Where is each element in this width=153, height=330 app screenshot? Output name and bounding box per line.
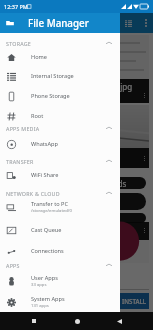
button[interactable]: Internal Storage / Audio records [2, 177, 146, 189]
staticText: Phone Storage [31, 92, 70, 100]
staticText: APPS [6, 262, 20, 269]
button[interactable]: Transfer to PC [0, 198, 120, 216]
button[interactable]: System Apps [0, 293, 120, 311]
button[interactable]: Root [0, 107, 120, 125]
button[interactable]: Home [68, 312, 86, 330]
staticText: Root [31, 112, 44, 120]
button[interactable]: More options [138, 13, 153, 33]
button[interactable]: Internal Storage / Docs [2, 213, 146, 223]
button[interactable]: Internal Storage [0, 67, 120, 85]
staticText: WhatsApp [31, 140, 58, 148]
button[interactable]: Backup of My APK On SD Card [2, 193, 146, 210]
staticText: Internal Storage [31, 72, 74, 80]
staticText: 1.2 MB 22:24 [5, 232, 90, 241]
staticText: 33 apps [31, 282, 47, 288]
button[interactable]: File options [141, 90, 147, 101]
button[interactable]: WiFi Share [0, 166, 120, 184]
staticText: WiFi Share [31, 171, 59, 179]
staticText: Internal Storage / Audio records [6, 178, 127, 189]
button[interactable]: INSTALL [119, 293, 149, 309]
staticText: APPS MEDIA [6, 125, 40, 132]
button[interactable]: Recents [25, 312, 43, 330]
staticText: STORAGE [6, 40, 32, 47]
staticText: 2.1 MB 12:37 [5, 92, 90, 101]
button[interactable]: Grid view [119, 13, 137, 33]
staticText: User Apps [31, 274, 58, 282]
button[interactable]: Phone Storage [0, 87, 120, 105]
staticText: INSTALL [122, 297, 147, 305]
staticText: File Manager [28, 17, 89, 30]
staticText: 3.6 MB 11:23 [5, 159, 90, 168]
button[interactable]: User Apps [0, 272, 120, 290]
button[interactable]: Home [0, 48, 120, 66]
staticText: Cast Queue [31, 226, 62, 234]
staticText: /storage/emulated/0 [31, 208, 72, 214]
staticText: 131 apps [31, 303, 49, 309]
staticText: Screenshot_20230104_123705.jpg [5, 81, 135, 92]
staticText: TRANSFER [6, 158, 34, 165]
button[interactable]: Cast Queue [0, 221, 120, 239]
button[interactable]: Open navigation drawer [0, 13, 20, 33]
staticText: NETWORK & CLOUD [6, 190, 60, 197]
staticText: 12:37 PM [4, 3, 28, 10]
staticText: Home [31, 53, 47, 61]
staticText: System Apps [31, 295, 65, 303]
button[interactable]: WhatsApp [0, 135, 120, 153]
staticText: 2020-08-11-wallpaper-estate.jpg [5, 222, 127, 233]
button[interactable]: File options [141, 225, 147, 236]
staticText: Backup of My APK On SD Card [6, 196, 120, 207]
button[interactable]: File options [141, 153, 147, 164]
staticText: Transfer to PC [31, 200, 68, 208]
staticText: Connections [31, 247, 64, 255]
button[interactable]: Connections [0, 242, 120, 260]
button[interactable]: Back [110, 312, 128, 330]
